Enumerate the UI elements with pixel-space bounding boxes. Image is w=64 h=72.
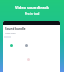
staticText: Audio track bbox=[5, 32, 16, 35]
staticText: Video soundtrack bbox=[0, 5, 64, 10]
staticText: Sound bundle bbox=[5, 27, 26, 31]
staticText: Pro in tool bbox=[0, 12, 64, 16]
